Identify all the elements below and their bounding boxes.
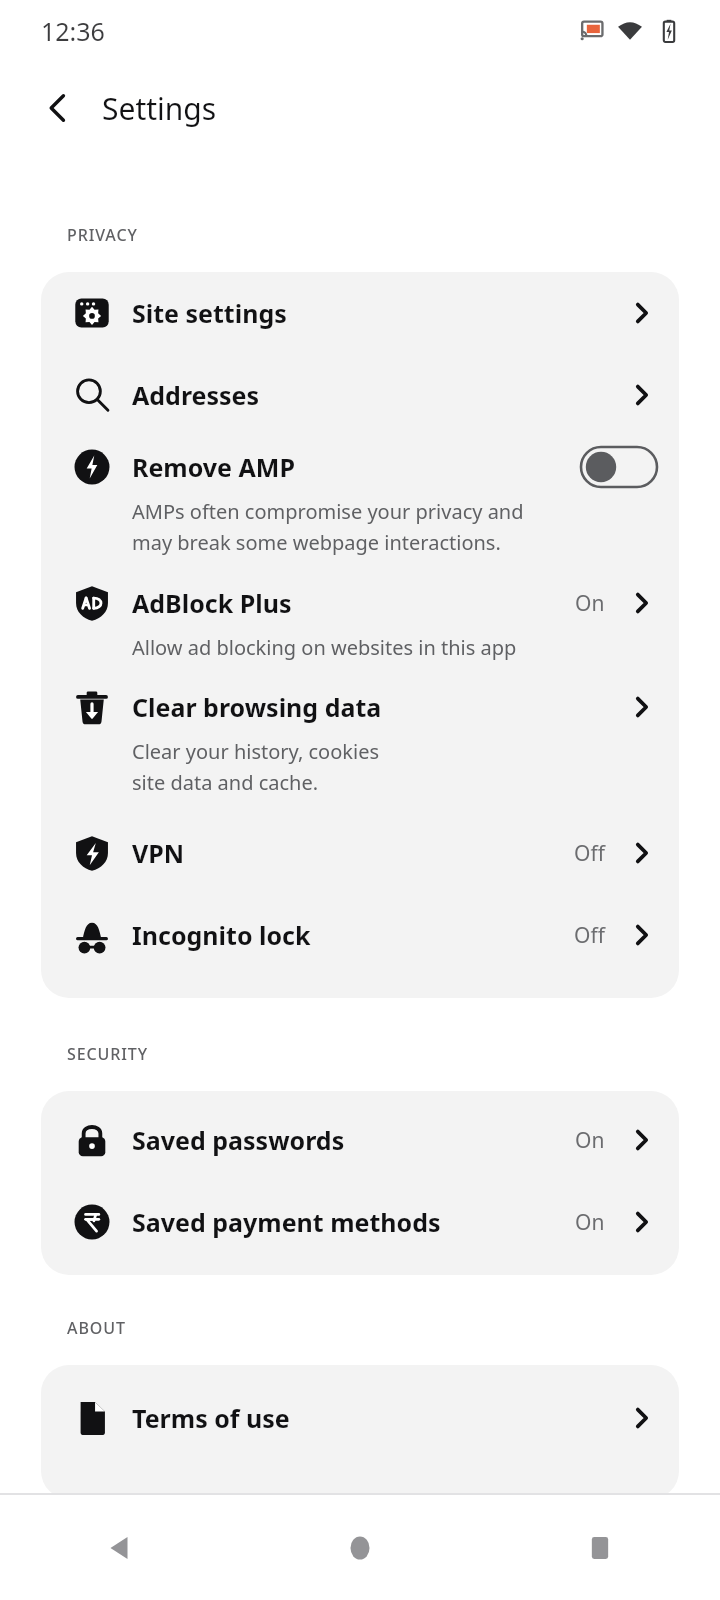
staticText: 12:36 bbox=[41, 14, 105, 48]
button[interactable]: Terms of use bbox=[41, 1377, 679, 1459]
staticText: Site settings bbox=[132, 296, 287, 330]
button[interactable]: VPN bbox=[41, 812, 679, 894]
staticText: On bbox=[575, 1208, 605, 1237]
staticText: PRIVACY bbox=[67, 224, 138, 246]
staticText: SECURITY bbox=[67, 1043, 148, 1065]
button[interactable]: Saved payment methods bbox=[41, 1181, 679, 1263]
button[interactable]: Remove AMP toggle bbox=[581, 447, 657, 487]
staticText: Saved payment methods bbox=[132, 1205, 441, 1239]
button[interactable]: Addresses bbox=[41, 354, 679, 436]
button[interactable]: Back bbox=[0, 1495, 240, 1600]
button[interactable]: Site settings bbox=[41, 272, 679, 354]
staticText: On bbox=[575, 1126, 605, 1155]
staticText: Addresses bbox=[132, 378, 260, 412]
button[interactable]: Remove AMP bbox=[41, 436, 679, 572]
button[interactable]: Clear browsing data bbox=[41, 676, 679, 812]
staticText: On bbox=[575, 589, 605, 618]
staticText: Allow ad blocking on websites in this ap… bbox=[132, 634, 517, 661]
staticText: Saved passwords bbox=[132, 1123, 345, 1157]
button[interactable]: Home bbox=[240, 1495, 480, 1600]
button[interactable]: Saved passwords bbox=[41, 1099, 679, 1181]
staticText: Incognito lock bbox=[132, 918, 311, 952]
staticText: AdBlock Plus bbox=[132, 586, 292, 620]
staticText: Clear your history, cookies site data an… bbox=[132, 738, 380, 795]
button[interactable]: Recent apps bbox=[480, 1495, 720, 1600]
staticText: Terms of use bbox=[132, 1401, 290, 1435]
button[interactable]: Back bbox=[30, 80, 86, 136]
staticText: AMPs often compromise your privacy and m… bbox=[132, 498, 524, 555]
staticText: Clear browsing data bbox=[132, 690, 382, 724]
staticText: VPN bbox=[132, 836, 185, 870]
staticText: Off bbox=[574, 921, 605, 950]
button[interactable]: Incognito lock bbox=[41, 894, 679, 976]
staticText: ABOUT bbox=[67, 1317, 126, 1339]
staticText: Settings bbox=[102, 88, 217, 129]
staticText: Off bbox=[574, 839, 605, 868]
staticText: Remove AMP bbox=[132, 450, 295, 484]
button[interactable]: AdBlock Plus bbox=[41, 572, 679, 676]
